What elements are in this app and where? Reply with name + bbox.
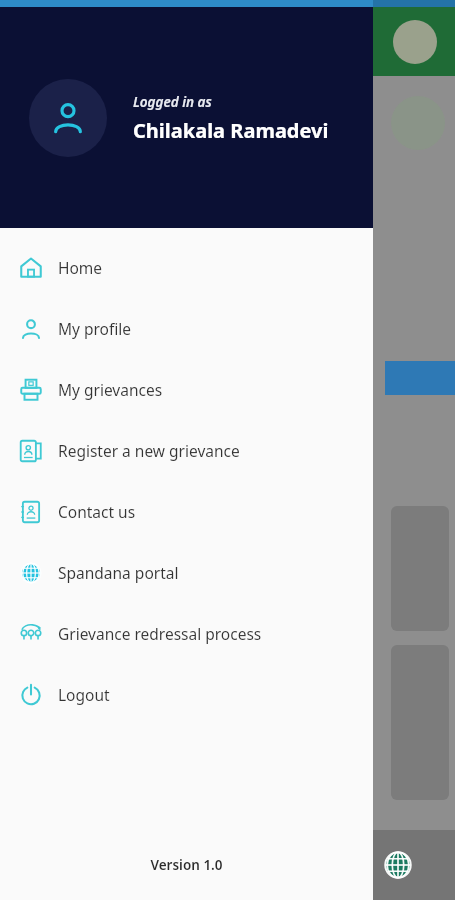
staticText: Contact us (58, 501, 136, 522)
staticText: My grievances (58, 379, 163, 400)
staticText: Grievance redressal process (58, 623, 262, 644)
button[interactable]: Contact us (0, 481, 373, 542)
button[interactable]: Logout (0, 664, 373, 725)
staticText: My profile (58, 318, 132, 339)
staticText: Spandana portal (58, 562, 179, 583)
button[interactable]: My grievances (0, 359, 373, 420)
staticText: Register a new grievance (58, 440, 240, 461)
button[interactable]: Grievance redressal process (0, 603, 373, 664)
button[interactable]: My profile (0, 298, 373, 359)
staticText: Version 1.0 (0, 856, 373, 874)
staticText: Logged in as (133, 93, 212, 111)
button[interactable]: Spandana portal (0, 542, 373, 603)
staticText: Chilakala Ramadevi (133, 117, 329, 144)
button[interactable]: Register a new grievance (0, 420, 373, 481)
staticText: Home (58, 257, 103, 278)
button[interactable]: Home (0, 237, 373, 298)
staticText: Logout (58, 684, 110, 705)
